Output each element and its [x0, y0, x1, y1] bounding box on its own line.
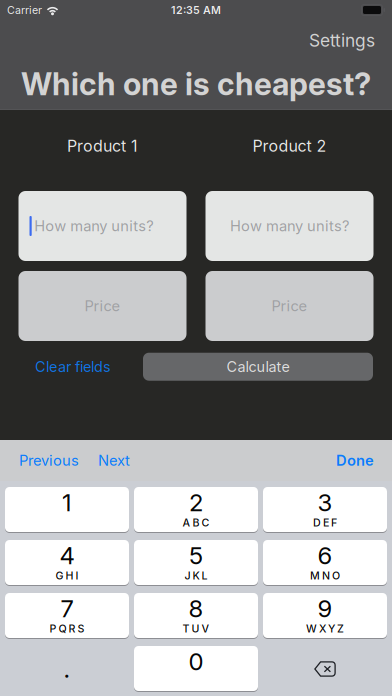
staticText: Which one is cheapest? — [21, 65, 371, 102]
button[interactable]: Decimal point — [5, 646, 129, 692]
button[interactable]: 0 — [134, 646, 258, 692]
staticText: J K L — [184, 569, 207, 582]
staticText: 1 — [62, 488, 72, 517]
staticText: Price — [84, 297, 120, 315]
staticText: Calculate — [226, 358, 289, 375]
button[interactable]: 1 — [5, 487, 129, 533]
staticText: P Q R S — [49, 622, 84, 635]
button[interactable]: 6 — [263, 540, 387, 586]
button[interactable]: Calculate — [143, 353, 373, 381]
button[interactable]: How many units? — [18, 191, 186, 261]
staticText: Next — [98, 452, 130, 469]
button[interactable]: Price — [18, 271, 186, 341]
staticText: How many units? — [230, 217, 349, 235]
button[interactable]: Done — [332, 446, 378, 475]
staticText: G H I — [55, 569, 78, 582]
button[interactable]: Delete — [263, 646, 387, 692]
button[interactable]: 3 — [263, 487, 387, 533]
staticText: How many units? — [34, 217, 153, 235]
button[interactable]: 8 — [134, 593, 258, 639]
staticText: Settings — [309, 30, 375, 51]
staticText: 8 — [188, 594, 203, 623]
staticText: 6 — [317, 541, 332, 570]
button[interactable]: Clear fields — [29, 352, 117, 381]
button[interactable]: 2 — [134, 487, 258, 533]
staticText: 3 — [317, 488, 332, 517]
staticText: M N O — [310, 569, 340, 582]
staticText: Clear fields — [35, 358, 111, 375]
staticText: 9 — [317, 594, 332, 623]
button[interactable]: Settings — [302, 25, 382, 56]
staticText: Carrier — [7, 3, 42, 16]
staticText: W X Y Z — [306, 622, 344, 635]
button[interactable]: 5 — [134, 540, 258, 586]
staticText: Product 1 — [67, 136, 138, 156]
button[interactable]: Price — [205, 271, 373, 341]
button[interactable]: 9 — [263, 593, 387, 639]
button[interactable]: Next — [94, 446, 134, 475]
button[interactable]: Previous — [15, 446, 83, 475]
staticText: 5 — [189, 541, 203, 570]
staticText: Price — [271, 297, 307, 315]
staticText: 4 — [59, 541, 74, 570]
staticText: A B C — [182, 516, 209, 529]
staticText: D E F — [313, 516, 337, 529]
staticText: T U V — [182, 622, 209, 635]
button[interactable]: 7 — [5, 593, 129, 639]
staticText: Product 2 — [252, 136, 326, 156]
staticText: . — [63, 654, 70, 683]
button[interactable]: 4 — [5, 540, 129, 586]
staticText: 12:35 AM — [171, 3, 221, 16]
staticText: 0 — [188, 647, 203, 676]
staticText: 7 — [60, 594, 73, 623]
staticText: Done — [336, 452, 374, 469]
staticText: 2 — [189, 488, 203, 517]
button[interactable]: How many units? — [205, 191, 373, 261]
staticText: Previous — [19, 452, 79, 469]
